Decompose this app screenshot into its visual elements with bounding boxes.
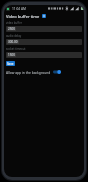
staticText: Save — [7, 62, 14, 66]
button[interactable]: Allow app in the background — [4, 68, 84, 75]
staticText: socket timeout — [6, 47, 26, 51]
staticText: audio delay — [6, 34, 22, 38]
staticText: video buffer — [6, 21, 22, 25]
staticText: 2500 — [8, 27, 15, 31]
button[interactable]: Info — [42, 14, 46, 18]
staticText: 300.00 — [8, 40, 18, 44]
staticText: 1500 — [8, 53, 15, 57]
button[interactable]: Save — [6, 61, 15, 66]
button[interactable]: 300.00 — [6, 39, 82, 45]
staticText: Allow app in the background — [6, 70, 51, 74]
staticText: Video buffer time — [6, 14, 40, 19]
button[interactable]: 1500 — [6, 52, 82, 58]
staticText: 11:04 AM — [12, 7, 27, 11]
button[interactable]: 2500 — [6, 26, 82, 32]
